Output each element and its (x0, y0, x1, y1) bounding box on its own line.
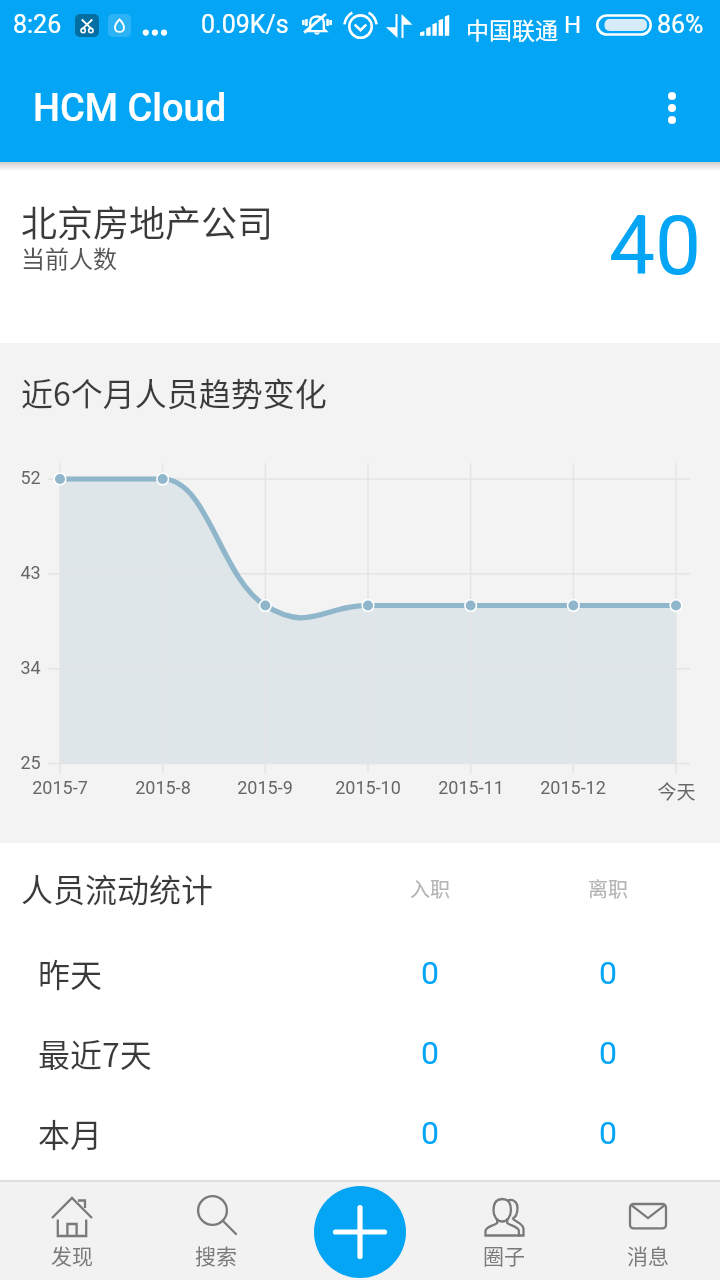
staticText: 2015-7 (32, 777, 88, 798)
staticText: 0 (599, 1034, 617, 1072)
staticText: 近6个月人员趋势变化 (21, 369, 327, 415)
staticText: 0 (421, 1114, 439, 1152)
staticText: 2015-10 (335, 777, 401, 798)
staticText: 86% (657, 10, 704, 39)
staticText: 0 (421, 1034, 439, 1072)
staticText: 本月 (38, 1110, 103, 1156)
button[interactable]: 昨天 (0, 933, 720, 1013)
staticText: 入职 (410, 874, 450, 903)
staticText: 0.09K/s (201, 10, 289, 39)
staticText: 人员流动统计 (21, 865, 214, 911)
staticText: 当前人数 (21, 240, 117, 275)
staticText: 中国联通 (466, 12, 558, 45)
staticText: 今天 (657, 777, 696, 805)
staticText: 发现 (51, 1240, 93, 1270)
staticText: H (564, 11, 582, 39)
button[interactable]: 北京房地产公司 (0, 162, 720, 343)
staticText: 0 (599, 1114, 617, 1152)
staticText: 34 (20, 657, 41, 678)
staticText: 圈子 (483, 1240, 525, 1270)
staticText: 0 (599, 954, 617, 992)
button[interactable]: 最近7天 (0, 1013, 720, 1093)
staticText: 0 (421, 954, 439, 992)
button[interactable]: 圈子 (432, 1180, 576, 1280)
button[interactable]: 消息 (576, 1180, 720, 1280)
staticText: 2015-8 (135, 777, 191, 798)
staticText: HCM Cloud (33, 86, 227, 131)
staticText: 2015-9 (237, 777, 293, 798)
staticText: 52 (20, 467, 41, 488)
staticText: 昨天 (38, 950, 103, 996)
button[interactable]: 本月 (0, 1093, 720, 1173)
button[interactable]: 搜索 (144, 1180, 288, 1280)
button[interactable]: Add (314, 1186, 406, 1278)
button[interactable]: 发现 (0, 1180, 144, 1280)
staticText: 25 (20, 752, 41, 773)
staticText: 离职 (588, 874, 628, 903)
staticText: 40 (609, 198, 702, 294)
staticText: 2015-12 (540, 777, 606, 798)
staticText: 2015-11 (438, 777, 504, 798)
staticText: 最近7天 (38, 1030, 152, 1076)
button[interactable]: More options (624, 54, 720, 162)
staticText: 8:26 (13, 10, 62, 39)
staticText: 43 (20, 562, 41, 583)
staticText: 消息 (627, 1240, 669, 1270)
staticText: 搜索 (195, 1240, 237, 1270)
staticText: 北京房地产公司 (21, 195, 274, 247)
